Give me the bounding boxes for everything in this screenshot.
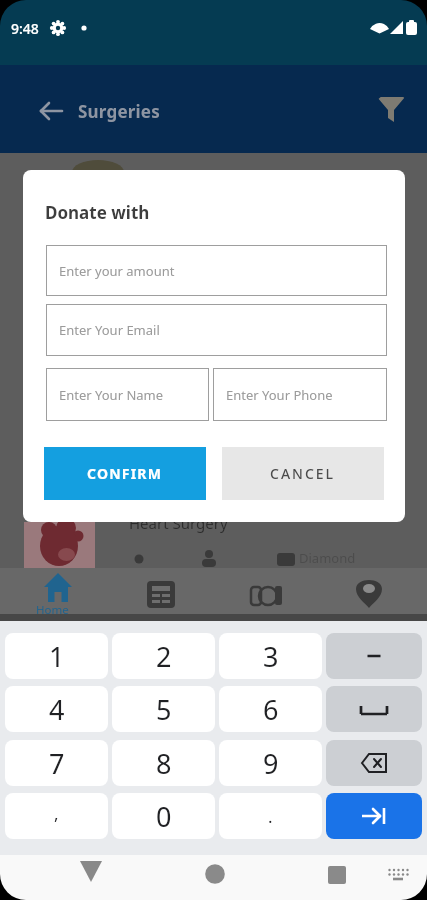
button[interactable]: 6 [219, 686, 322, 732]
button[interactable]: 5 [112, 686, 215, 732]
staticText: CANCEL [270, 464, 336, 483]
button[interactable] [237, 568, 297, 618]
staticText: Home [36, 602, 69, 618]
button[interactable]: 9 [219, 740, 322, 786]
staticText: Enter your amount [59, 262, 175, 280]
button[interactable] [195, 853, 231, 889]
staticText: 7 [49, 745, 65, 782]
button[interactable]: , [5, 793, 108, 839]
button[interactable]: 2 [112, 633, 215, 679]
button[interactable] [131, 568, 191, 618]
button[interactable] [326, 633, 422, 679]
staticText: 6 [263, 691, 279, 728]
button[interactable] [326, 740, 422, 786]
staticText: Heart Surgery [129, 513, 228, 533]
staticText: Surgeries [78, 100, 160, 123]
staticText: Enter Your Phone [226, 386, 333, 404]
button[interactable] [326, 793, 422, 839]
button[interactable] [318, 853, 354, 889]
staticText: CONFIRM [87, 464, 163, 483]
staticText: 8 [156, 745, 172, 782]
button[interactable] [34, 93, 70, 129]
button[interactable]: CONFIRM [44, 447, 206, 500]
button[interactable]: Enter Your Email [46, 304, 387, 356]
staticText: , [54, 802, 59, 825]
button[interactable] [339, 568, 399, 618]
staticText: Donate with [45, 201, 150, 224]
staticText: 9 [263, 745, 279, 782]
button[interactable]: 1 [5, 633, 108, 679]
button[interactable] [382, 853, 418, 889]
button[interactable]: . [219, 793, 322, 839]
staticText: Diamond [299, 549, 356, 567]
button[interactable] [72, 853, 108, 889]
staticText: . [268, 805, 273, 828]
button[interactable]: Enter your amount [46, 245, 387, 296]
button[interactable]: Enter Your Name [46, 368, 209, 421]
staticText: 2 [156, 638, 172, 675]
button[interactable]: 7 [5, 740, 108, 786]
staticText: Enter Your Name [59, 386, 164, 404]
staticText: Enter Your Email [59, 321, 160, 339]
staticText: 4 [49, 691, 65, 728]
button[interactable]: 3 [219, 633, 322, 679]
staticText: 3 [263, 638, 279, 675]
button[interactable] [326, 686, 422, 732]
button[interactable]: 4 [5, 686, 108, 732]
button[interactable]: 0 [112, 793, 215, 839]
staticText: 9:48 [11, 19, 39, 38]
staticText: 1 [49, 638, 65, 675]
staticText: 0 [156, 798, 172, 835]
button[interactable]: CANCEL [222, 447, 384, 500]
button[interactable]: 8 [112, 740, 215, 786]
staticText: 5 [156, 691, 172, 728]
button[interactable]: Home [25, 568, 91, 618]
button[interactable]: Enter Your Phone [213, 368, 387, 421]
button[interactable] [374, 93, 410, 129]
